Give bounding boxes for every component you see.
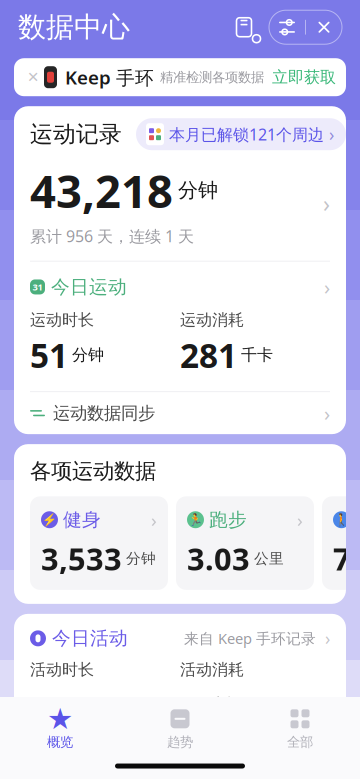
staticText: 累计 956 天，连续 1 天: [30, 225, 194, 247]
button[interactable]: 本月已解锁121个周边: [136, 118, 346, 150]
staticText: 3.03: [187, 538, 250, 579]
staticText: 运动消耗: [180, 310, 244, 330]
staticText: 全部: [287, 734, 313, 750]
button[interactable]: [269, 10, 342, 44]
button[interactable]: 运动数据同步: [14, 392, 346, 434]
staticText: 51: [30, 333, 68, 377]
staticText: 活动消耗: [180, 660, 244, 680]
staticText: 281: [180, 333, 237, 377]
staticText: 7.77: [333, 538, 360, 579]
staticText: 趋势: [167, 734, 193, 750]
staticText: 🚶: [334, 513, 349, 527]
staticText: 精准检测各项数据: [160, 69, 264, 85]
button[interactable]: 运动证书: [227, 10, 261, 44]
button[interactable]: ★: [0, 708, 120, 750]
staticText: 今日活动: [52, 627, 128, 650]
button[interactable]: 🏃: [176, 496, 314, 590]
button[interactable]: 趋势: [120, 708, 240, 750]
staticText: 概览: [47, 734, 73, 750]
staticText: ›: [297, 507, 303, 532]
staticText: 运动数据同步: [53, 402, 155, 424]
staticText: ›: [323, 188, 330, 218]
staticText: 今日运动: [51, 275, 127, 298]
staticText: 分钟: [72, 345, 104, 365]
staticText: --: [30, 682, 52, 727]
staticText: 公里: [254, 549, 284, 567]
staticText: 运动记录: [30, 120, 122, 148]
staticText: ›: [324, 400, 330, 426]
staticText: 43,218: [30, 160, 173, 220]
staticText: 各项运动数据: [30, 458, 156, 484]
staticText: 🏃: [188, 513, 203, 527]
staticText: ★: [47, 702, 73, 735]
staticText: 分钟: [178, 178, 218, 203]
staticText: 分钟: [126, 549, 156, 567]
button[interactable]: 今日活动: [14, 614, 346, 741]
staticText: ⚡: [42, 513, 57, 527]
staticText: ›: [329, 123, 334, 146]
staticText: 运动时长: [30, 310, 94, 330]
staticText: Keep 手环: [65, 65, 154, 90]
staticText: 分钟: [56, 695, 88, 714]
staticText: ›: [324, 274, 330, 300]
staticText: ✕: [27, 69, 39, 85]
staticText: 跑步: [209, 508, 247, 531]
staticText: 数据中心: [18, 10, 130, 44]
button[interactable]: 31: [14, 262, 346, 391]
staticText: 千卡: [241, 345, 273, 365]
button[interactable]: ⚡: [30, 496, 168, 590]
button[interactable]: 43,218: [14, 150, 346, 261]
staticText: 31: [32, 281, 42, 293]
staticText: 3,533: [41, 538, 122, 579]
staticText: 健身: [63, 508, 101, 531]
button[interactable]: 🚶: [322, 496, 360, 590]
button[interactable]: ✕: [14, 58, 346, 96]
staticText: ›: [151, 507, 157, 532]
staticText: ›: [325, 627, 330, 650]
staticText: --: [180, 682, 202, 727]
button[interactable]: 全部: [240, 708, 360, 750]
staticText: 本月已解锁121个周边: [169, 124, 324, 145]
staticText: 活动时长: [30, 660, 94, 680]
button[interactable]: 步: [14, 751, 346, 779]
staticText: 立即获取: [272, 67, 336, 87]
staticText: 来自 Keep 手环记录: [184, 629, 316, 648]
